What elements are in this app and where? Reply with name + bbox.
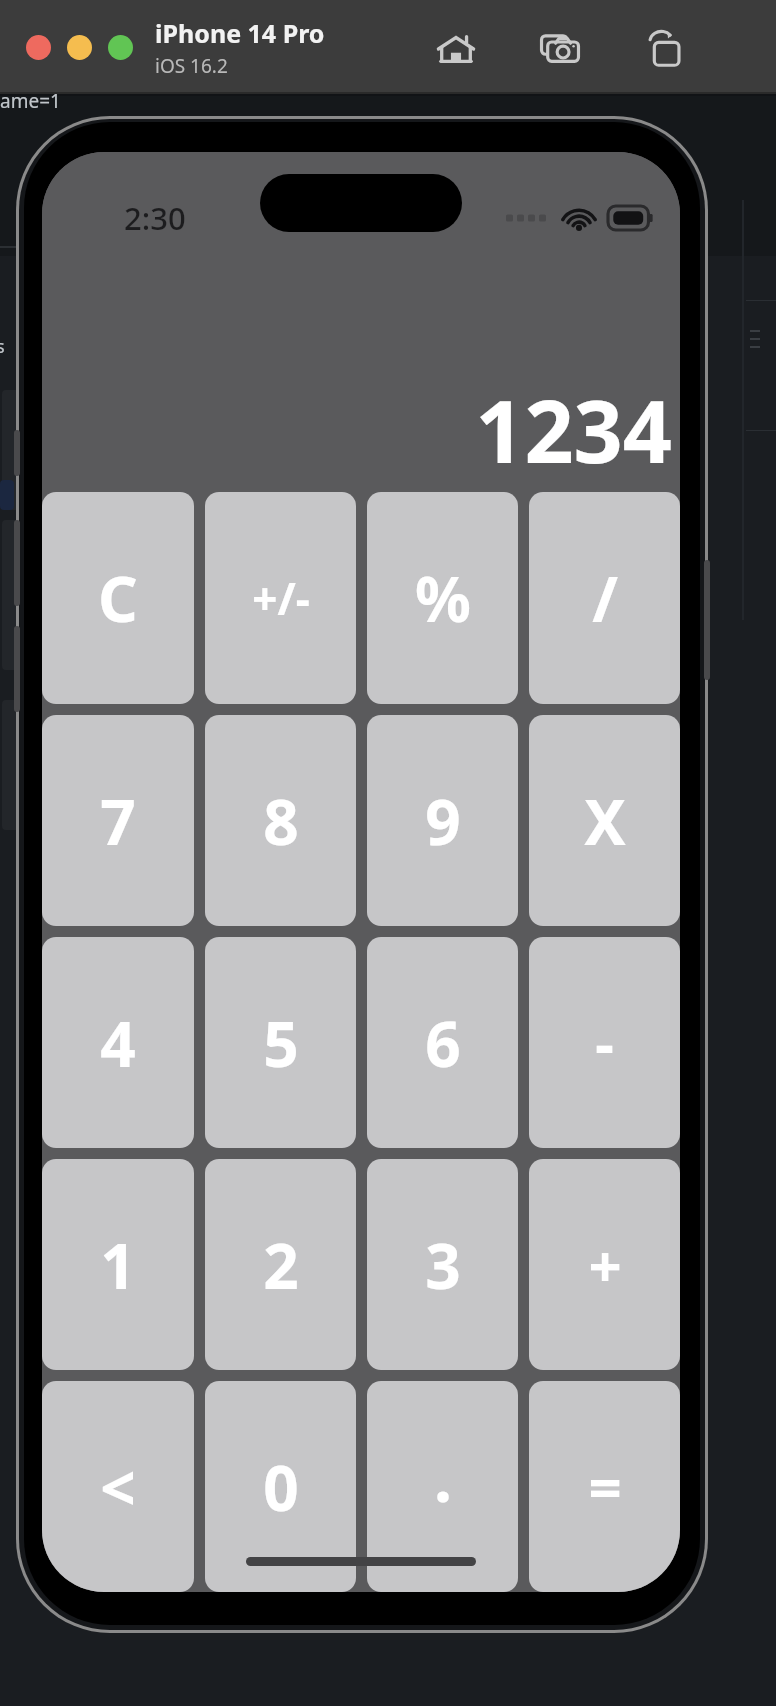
staticText: 6 [425,1001,461,1085]
staticText: s [0,334,5,359]
staticText: + [588,1225,622,1304]
staticText: 1 [100,1223,136,1307]
button[interactable]: = [529,1381,680,1592]
staticText: iOS 16.2 [155,53,228,79]
button[interactable]: X [529,715,680,926]
button[interactable]: Screenshot [534,23,586,75]
button[interactable]: 8 [205,715,356,926]
staticText: C [98,556,138,640]
button[interactable]: Home [430,23,482,75]
staticText: iPhone 14 Pro [155,16,325,50]
staticText: 4 [100,1001,136,1085]
staticText: 3 [425,1223,461,1307]
button[interactable]: C [42,492,194,704]
staticText: ame=1 [0,88,61,114]
staticText: 7 [100,779,136,863]
button[interactable]: 0 [205,1381,356,1592]
button[interactable]: - [529,937,680,1148]
button[interactable]: 7 [42,715,194,926]
button[interactable]: % [367,492,518,704]
button[interactable]: + [529,1159,680,1370]
button[interactable]: Rotate [638,23,690,75]
staticText: X [584,779,626,863]
staticText: 9 [425,779,461,863]
button[interactable]: 9 [367,715,518,926]
button[interactable]: +/- [205,492,356,704]
staticText: 2:30 [124,197,186,239]
staticText: - [595,1003,614,1082]
button[interactable]: . [367,1381,518,1592]
button[interactable]: < [42,1381,194,1592]
staticText: % [415,556,471,640]
staticText: . [434,1434,452,1521]
button[interactable]: 2 [205,1159,356,1370]
button[interactable]: Close [26,35,51,60]
button[interactable]: Maximize [108,35,133,60]
staticText: < [100,1445,136,1529]
staticText: = [588,1447,622,1526]
button[interactable]: Minimize [67,35,92,60]
staticText: 5 [263,1001,299,1085]
staticText: 0 [263,1445,299,1529]
button[interactable]: 5 [205,937,356,1148]
staticText: 2 [263,1223,299,1307]
button[interactable]: / [529,492,680,704]
button[interactable]: 1 [42,1159,194,1370]
button[interactable]: 6 [367,937,518,1148]
staticText: 8 [263,779,299,863]
staticText: +/- [252,568,310,628]
button[interactable]: 3 [367,1159,518,1370]
button[interactable]: 4 [42,937,194,1148]
staticText: / [592,556,618,640]
staticText: 1234 [475,371,672,488]
